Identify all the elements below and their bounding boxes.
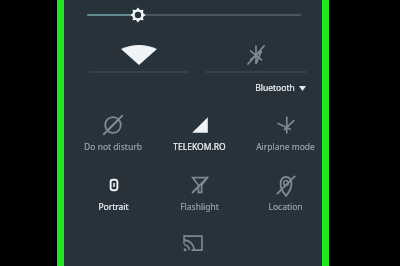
staticText: Airplane mode [256,141,315,153]
staticText: TELEKOM.RO [173,141,226,153]
button[interactable]: Wi-Fi [84,38,194,78]
staticText: Flashlight [180,201,219,213]
staticText: Do not disturb [84,141,142,153]
staticText: Portrait [98,201,129,213]
button[interactable]: Cast screen [179,230,207,258]
staticText: Location [268,201,303,213]
button[interactable]: TELEKOM.RO [156,112,242,160]
button[interactable]: Do not disturb [70,112,156,160]
button[interactable]: Portrait [70,172,156,220]
button[interactable]: Bluetooth [200,38,312,96]
staticText: Bluetooth [255,82,295,94]
button[interactable]: Location [242,172,328,220]
button[interactable]: Brightness [78,4,308,26]
button[interactable]: Airplane mode [242,112,328,160]
button[interactable]: Flashlight [156,172,242,220]
